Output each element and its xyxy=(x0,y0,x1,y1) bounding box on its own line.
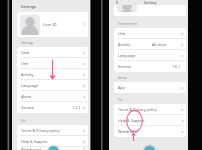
staticText: Etc. xyxy=(21,119,27,123)
button[interactable]: Version xyxy=(17,102,88,113)
button[interactable]: Terms & Privacy policy xyxy=(114,104,186,115)
staticText: Alarm xyxy=(118,76,127,80)
staticText: Setting xyxy=(144,0,157,5)
staticText: Activity xyxy=(118,42,131,47)
staticText: Version xyxy=(118,64,131,69)
staticText: User ID xyxy=(43,22,57,27)
staticText: All steps xyxy=(152,42,167,47)
button[interactable]: Back xyxy=(114,0,120,5)
button[interactable]: Terms & Privacy policy xyxy=(17,125,88,136)
button[interactable] xyxy=(114,5,186,16)
staticText: 1.6.1 xyxy=(172,64,181,69)
staticText: Unit xyxy=(21,61,29,66)
staticText: Help & Support xyxy=(118,118,145,123)
button[interactable]: Help & Support xyxy=(17,136,88,147)
button[interactable]: Unit xyxy=(114,28,186,39)
staticText: Terms & Privacy policy xyxy=(118,107,157,112)
button[interactable]: Unit xyxy=(17,58,88,69)
staticText: Unit xyxy=(118,31,126,36)
button[interactable]: Language xyxy=(114,50,186,61)
button[interactable]: Version xyxy=(114,61,186,72)
staticText: Etc. xyxy=(118,98,124,102)
button[interactable]: User ID xyxy=(17,12,88,37)
button[interactable]: App xyxy=(114,82,186,93)
staticText: Help & Support xyxy=(21,139,48,144)
staticText: 1.3.1 xyxy=(72,105,81,110)
staticText: Language xyxy=(21,83,39,88)
staticText: Terms & Privacy policy xyxy=(21,128,60,133)
button[interactable]: Help & Support xyxy=(114,115,186,126)
staticText: Withdrawal xyxy=(21,147,41,150)
staticText: App xyxy=(118,85,125,90)
staticText: Language xyxy=(118,53,136,58)
button[interactable]: Withdrawal xyxy=(114,126,186,137)
button[interactable]: Activity xyxy=(114,39,186,50)
staticText: Alarm xyxy=(21,94,32,99)
staticText: Environment xyxy=(118,22,138,26)
button[interactable]: Goal xyxy=(17,47,88,58)
button[interactable]: Activity xyxy=(17,69,88,80)
staticText: Goal xyxy=(21,50,29,55)
staticText: Withdrawal xyxy=(118,129,138,134)
staticText: Version xyxy=(21,105,34,110)
button[interactable]: Withdrawal xyxy=(17,147,88,150)
staticText: Activity xyxy=(21,72,34,77)
staticText: Settings xyxy=(21,4,37,9)
button[interactable]: Language xyxy=(17,80,88,91)
staticText: Settings xyxy=(21,41,34,45)
button[interactable]: Alarm xyxy=(17,91,88,102)
